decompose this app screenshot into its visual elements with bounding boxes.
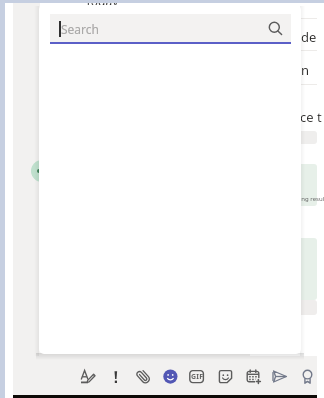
staticText: ce t <box>300 108 322 126</box>
button[interactable]: Send <box>272 369 288 385</box>
staticText: Today <box>85 0 119 9</box>
button[interactable]: Schedule meeting <box>246 369 262 385</box>
button[interactable]: Sticker <box>218 369 234 385</box>
button[interactable]: Emoji <box>163 369 179 385</box>
button[interactable]: Attach file <box>136 369 152 385</box>
staticText: Search <box>61 21 99 37</box>
button[interactable]: Set delivery options <box>108 369 124 385</box>
button[interactable]: Format <box>80 369 96 385</box>
staticText: n <box>301 61 310 79</box>
other: Search <box>268 21 286 39</box>
staticText: de <box>301 28 317 46</box>
button[interactable]: Praise <box>300 369 316 385</box>
staticText: GIF <box>191 372 204 382</box>
staticText: showing results <box>285 195 324 203</box>
button[interactable]: Search <box>50 14 291 42</box>
button[interactable]: GIF <box>189 369 205 385</box>
